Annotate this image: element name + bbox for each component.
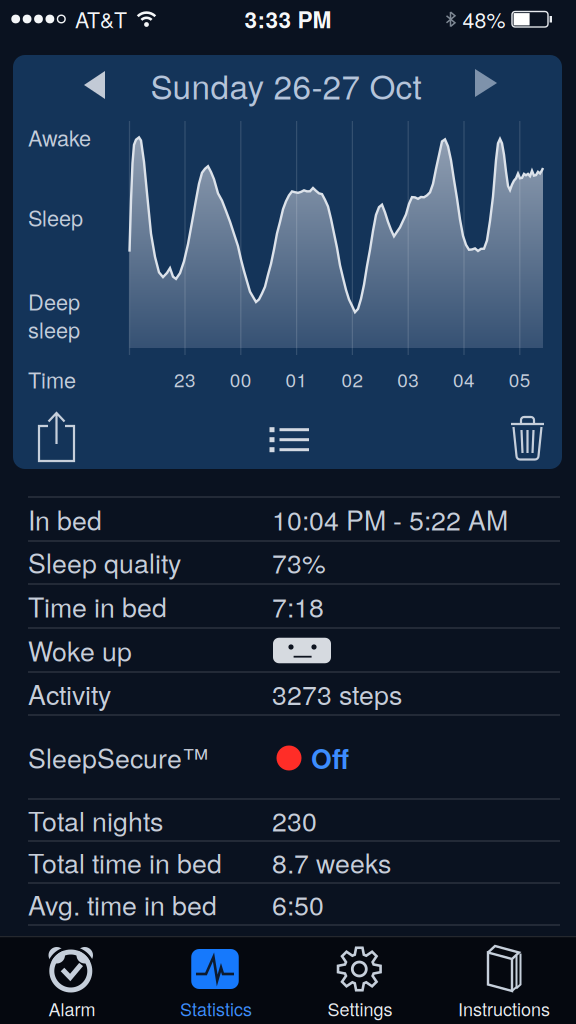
button[interactable]: Delete [0,0,70,70]
staticText: Total nights [28,801,163,839]
button[interactable]: Settings [288,936,432,1024]
button[interactable]: Sleep notes [0,0,70,70]
staticText: 03 [397,365,419,392]
staticText: 05 [509,365,531,392]
staticText: Statistics [180,996,252,1021]
staticText: In bed [28,500,102,538]
staticText: 01 [286,365,308,392]
staticText: Instructions [458,996,550,1021]
staticText: AT&T [75,4,127,34]
button[interactable]: Share [0,0,70,70]
staticText: 230 [272,801,317,839]
staticText: Avg. time in bed [28,885,217,923]
button[interactable]: Instructions [432,936,576,1024]
staticText: 6:50 [272,885,324,923]
staticText: Off [311,739,349,777]
staticText: 48% [462,4,505,34]
staticText: 3273 steps [272,674,402,713]
staticText: Time [28,363,76,394]
staticText: Settings [327,996,392,1021]
staticText: 02 [341,365,363,392]
staticText: Woke up [28,631,132,669]
staticText: 23 [174,365,196,392]
staticText: Alarm [48,996,95,1021]
staticText: Deep [28,285,80,316]
staticText: 7:18 [272,587,324,625]
staticText: Time in bed [28,587,167,625]
button[interactable]: Next night [0,0,50,50]
staticText: Sleep [28,201,83,232]
staticText: Sleep quality [28,543,181,581]
staticText: SleepSecure™ [28,738,209,776]
staticText: 8.7 weeks [272,843,391,881]
staticText: sleep [28,313,80,344]
staticText: 10:04 PM - 5:22 AM [272,500,508,538]
staticText: Sunday 26-27 Oct [150,61,421,109]
button[interactable]: Previous night [0,0,50,50]
staticText: 04 [453,365,475,392]
staticText: Total time in bed [28,843,222,881]
staticText: 3:33 PM [244,3,331,35]
staticText: 00 [230,365,252,392]
staticText: Activity [28,674,111,713]
button[interactable]: Alarm [0,936,144,1024]
staticText: 73% [272,543,326,581]
staticText: Awake [28,121,91,152]
button[interactable]: SleepSecure Off [0,0,576,1024]
button[interactable]: Statistics [144,936,288,1024]
